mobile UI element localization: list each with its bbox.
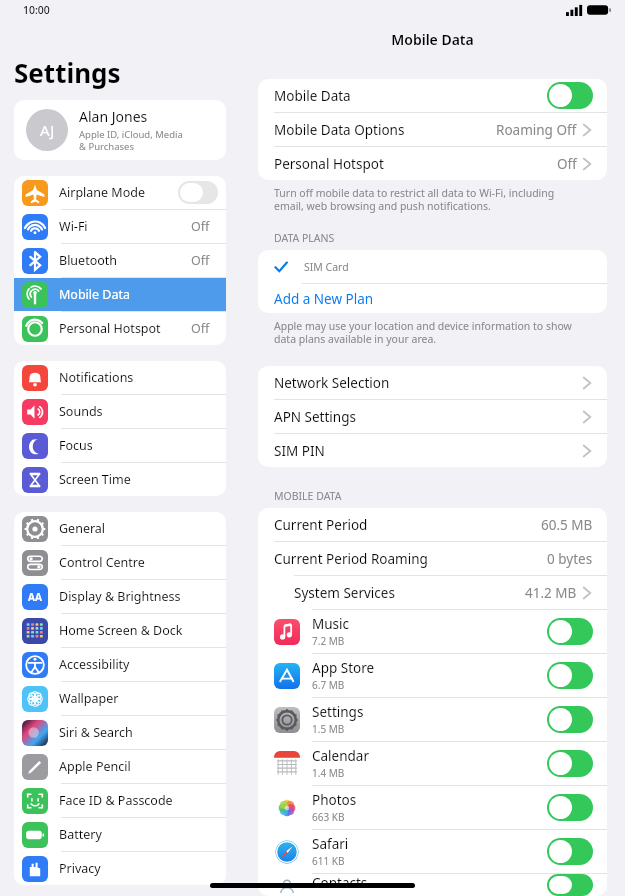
button[interactable]: Face ID & Passcode xyxy=(14,784,226,817)
staticText: Off xyxy=(191,218,210,235)
button[interactable]: Music xyxy=(258,610,607,653)
button[interactable]: Add a New Plan xyxy=(258,284,607,313)
staticText: Off xyxy=(557,155,577,173)
staticText: Music xyxy=(312,615,350,633)
staticText: SIM Card xyxy=(304,260,593,274)
staticText: Roaming Off xyxy=(496,121,577,139)
button[interactable]: Contacts xyxy=(258,874,607,896)
button[interactable]: Control Centre xyxy=(14,546,226,579)
button[interactable]: Network Selection xyxy=(258,366,607,399)
button[interactable]: Current Period Roaming xyxy=(258,542,607,575)
button[interactable]: System Services xyxy=(258,576,607,609)
staticText: Personal Hotspot xyxy=(274,155,557,173)
staticText: 0 bytes xyxy=(547,550,593,568)
staticText: Alan Jones xyxy=(79,107,148,126)
button[interactable]: Mobile Data xyxy=(258,79,607,112)
button[interactable]: Home Screen & Dock xyxy=(14,614,226,647)
staticText: Personal Hotspot xyxy=(59,320,191,337)
button[interactable]: Privacy xyxy=(14,852,226,885)
button[interactable]: Bluetooth xyxy=(14,244,226,277)
button[interactable]: Apple Pencil xyxy=(14,750,226,783)
staticText: APN Settings xyxy=(274,408,577,426)
button[interactable]: Focus xyxy=(14,429,226,462)
button[interactable]: Battery xyxy=(14,818,226,851)
staticText: Mobile Data Options xyxy=(274,121,496,139)
button[interactable]: Accessibility xyxy=(14,648,226,681)
button[interactable]: Safari xyxy=(258,830,607,873)
button[interactable]: Personal Hotspot xyxy=(258,147,607,180)
staticText: Wallpaper xyxy=(59,690,218,707)
staticText: Control Centre xyxy=(59,554,218,571)
button[interactable]: Settings xyxy=(258,698,607,741)
staticText: Settings xyxy=(312,703,364,721)
staticText: Apple Pencil xyxy=(59,758,218,775)
staticText: Notifications xyxy=(59,369,218,386)
staticText: Photos xyxy=(312,791,357,809)
button[interactable]: Mobile Data xyxy=(14,278,226,311)
staticText: 663 KB xyxy=(312,810,345,824)
staticText: Safari xyxy=(312,835,349,853)
staticText: Accessibility xyxy=(59,656,218,673)
button[interactable]: Sounds xyxy=(14,395,226,428)
staticText: Current Period Roaming xyxy=(274,550,547,568)
button[interactable]: AJ xyxy=(14,100,226,160)
button[interactable]: Screen Time xyxy=(14,463,226,496)
button[interactable]: Airplane Mode xyxy=(14,176,226,209)
staticText: 10:00 xyxy=(23,3,50,17)
staticText: Calendar xyxy=(312,747,369,765)
staticText: MOBILE DATA xyxy=(274,489,342,503)
staticText: Contacts xyxy=(312,874,368,892)
staticText: AJ xyxy=(40,120,55,140)
staticText: 6.7 MB xyxy=(312,678,345,692)
button[interactable]: Photos xyxy=(258,786,607,829)
staticText: Airplane Mode xyxy=(59,184,178,201)
button[interactable]: Calendar xyxy=(258,742,607,785)
staticText: 611 KB xyxy=(312,854,345,868)
button[interactable]: Siri & Search xyxy=(14,716,226,749)
staticText: System Services xyxy=(294,584,525,602)
staticText: Focus xyxy=(59,437,218,454)
staticText: Wi-Fi xyxy=(59,218,191,235)
staticText: 7.2 MB xyxy=(312,634,345,648)
button[interactable]: Wi-Fi xyxy=(14,210,226,243)
staticText: Siri & Search xyxy=(59,724,218,741)
staticText: Add a New Plan xyxy=(274,290,374,308)
staticText: 41.2 MB xyxy=(525,584,577,602)
button[interactable]: Mobile Data Options xyxy=(258,113,607,146)
button[interactable]: SIM Card xyxy=(258,250,607,283)
staticText: General xyxy=(59,520,218,537)
staticText: AA xyxy=(28,590,42,604)
staticText: Off xyxy=(191,252,210,269)
staticText: Battery xyxy=(59,826,218,843)
staticText: Home Screen & Dock xyxy=(59,622,218,639)
staticText: Face ID & Passcode xyxy=(59,792,218,809)
button[interactable]: General xyxy=(14,512,226,545)
button[interactable]: AA xyxy=(14,580,226,613)
staticText: DATA PLANS xyxy=(274,231,335,245)
button[interactable]: APN Settings xyxy=(258,400,607,433)
staticText: Current Period xyxy=(274,516,541,534)
staticText: Settings xyxy=(14,55,121,90)
staticText: Screen Time xyxy=(59,471,218,488)
staticText: Sounds xyxy=(59,403,218,420)
staticText: 1.4 MB xyxy=(312,766,345,780)
staticText: Network Selection xyxy=(274,374,577,392)
button[interactable]: Wallpaper xyxy=(14,682,226,715)
staticText: Mobile Data xyxy=(59,286,218,303)
staticText: App Store xyxy=(312,659,375,677)
button[interactable]: Notifications xyxy=(14,361,226,394)
button[interactable]: SIM PIN xyxy=(258,434,607,467)
button[interactable]: App Store xyxy=(258,654,607,697)
staticText: Apple may use your location and device i… xyxy=(274,319,585,346)
staticText: Bluetooth xyxy=(59,252,191,269)
button[interactable]: Personal Hotspot xyxy=(14,312,226,345)
staticText: Display & Brightness xyxy=(59,588,218,605)
staticText: Mobile Data xyxy=(240,30,625,49)
button[interactable]: Current Period xyxy=(258,508,607,541)
staticText: Turn off mobile data to restrict all dat… xyxy=(274,186,585,213)
staticText: 1.5 MB xyxy=(312,722,345,736)
staticText: Privacy xyxy=(59,860,218,877)
staticText: SIM PIN xyxy=(274,442,577,460)
staticText: Apple ID, iCloud, Media & Purchases xyxy=(79,128,183,153)
